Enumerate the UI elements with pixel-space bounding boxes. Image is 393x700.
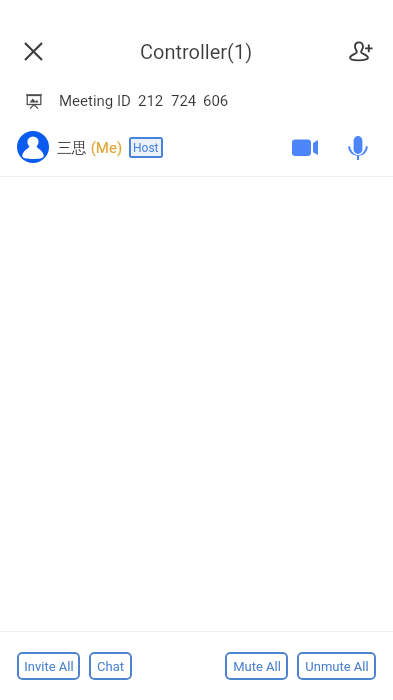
staticText: Controller(1) xyxy=(140,40,253,63)
button[interactable]: Add participant xyxy=(340,30,382,72)
button[interactable]: Close xyxy=(13,31,53,71)
button[interactable]: Mute All xyxy=(225,652,288,680)
staticText: Mute All xyxy=(233,659,281,674)
button[interactable]: Meeting ID xyxy=(0,81,393,121)
staticText: Host xyxy=(133,141,159,155)
button[interactable]: Invite All xyxy=(17,652,80,680)
staticText: 212 xyxy=(138,92,164,110)
staticText: Invite All xyxy=(24,659,74,674)
button[interactable]: Chat xyxy=(89,652,132,680)
button[interactable]: Unmute All xyxy=(297,652,376,680)
staticText: Meeting ID xyxy=(59,92,131,110)
staticText: 三思 (Me) xyxy=(57,139,123,158)
staticText: Chat xyxy=(97,659,124,674)
button[interactable]: Camera xyxy=(285,127,325,167)
button[interactable]: Microphone xyxy=(338,127,378,167)
staticText: 724 xyxy=(171,92,197,110)
button[interactable]: 三思 (Me) xyxy=(0,121,393,173)
staticText: 606 xyxy=(203,92,229,110)
staticText: Unmute All xyxy=(305,659,369,674)
